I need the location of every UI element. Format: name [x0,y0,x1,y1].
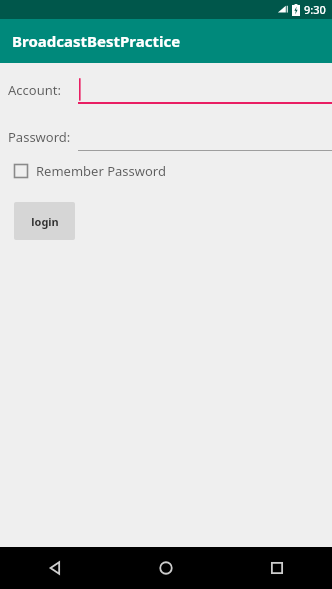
staticText: Password: [8,128,71,146]
staticText: BroadcastBestPractice [12,31,181,51]
staticText: Account: [8,81,61,99]
button[interactable]: Recent apps [221,547,332,589]
staticText: Remember Password [36,162,166,180]
button[interactable] [78,123,332,151]
button[interactable] [78,76,332,104]
staticText: 9:30 [304,2,326,17]
staticText: login [31,214,59,229]
button[interactable]: Home [110,547,221,589]
button[interactable]: Remember Password [14,160,166,182]
button[interactable]: login [14,202,75,240]
button[interactable]: Back [0,547,110,589]
